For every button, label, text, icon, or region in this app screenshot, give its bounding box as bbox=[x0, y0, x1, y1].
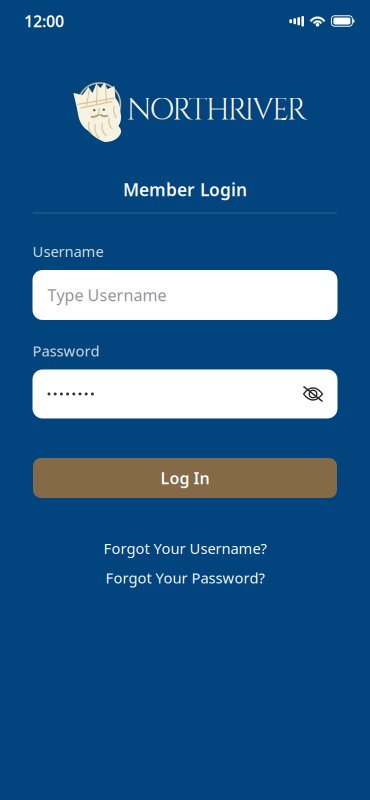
staticText: Password bbox=[32, 341, 99, 360]
staticText: Type Username bbox=[47, 284, 166, 306]
button[interactable] bbox=[32, 369, 337, 418]
staticText: Log In bbox=[160, 467, 209, 488]
button[interactable]: Log In bbox=[33, 458, 337, 498]
button[interactable]: Type Username bbox=[32, 270, 337, 320]
staticText: 12:00 bbox=[24, 10, 64, 32]
staticText: Forgot Your Username? bbox=[103, 538, 266, 558]
button[interactable]: Forgot Your Username? bbox=[103, 538, 266, 558]
staticText: Member Login bbox=[123, 178, 247, 201]
staticText: Username bbox=[32, 241, 103, 261]
staticText: NORTHRIVER bbox=[126, 90, 307, 131]
staticText: Forgot Your Password? bbox=[105, 568, 264, 587]
button[interactable]: Forgot Your Password? bbox=[105, 568, 264, 587]
button[interactable] bbox=[301, 385, 337, 403]
